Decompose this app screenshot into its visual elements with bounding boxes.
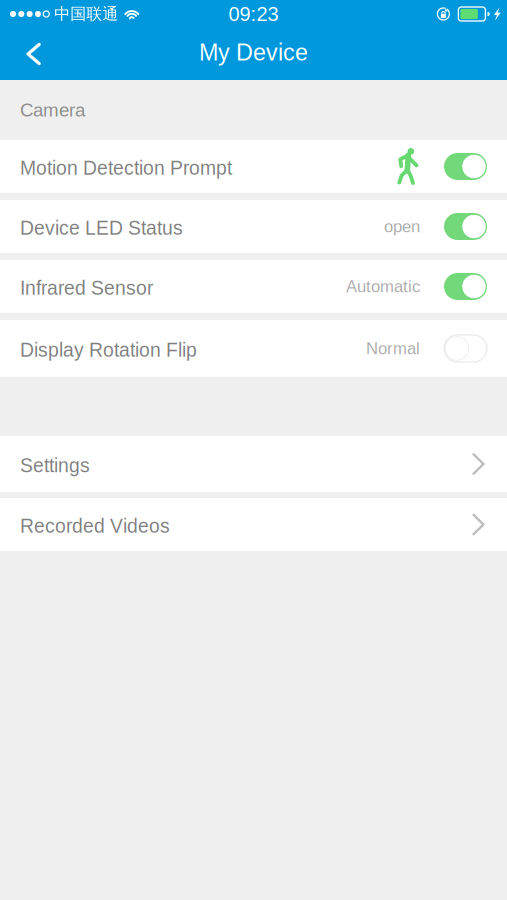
staticText: Device LED Status xyxy=(20,217,183,239)
staticText: Display Rotation Flip xyxy=(20,339,197,361)
button[interactable]: Motion Detection Prompt xyxy=(0,140,507,193)
staticText: Infrared Sensor xyxy=(20,277,153,299)
staticText: My Device xyxy=(199,39,308,66)
staticText: Camera xyxy=(20,100,85,120)
staticText: 中国联通 xyxy=(54,4,118,24)
button[interactable]: Settings xyxy=(0,436,507,492)
staticText: Recorded Videos xyxy=(20,515,170,537)
button[interactable]: Recorded Videos xyxy=(0,498,507,551)
staticText: open xyxy=(384,217,420,236)
button[interactable]: Device LED Status xyxy=(0,200,507,253)
staticText: Automatic xyxy=(346,277,420,296)
button[interactable]: Back xyxy=(8,29,59,79)
staticText: Settings xyxy=(20,455,90,476)
button[interactable]: Display Rotation Flip xyxy=(0,320,507,377)
staticText: 09:23 xyxy=(228,3,278,25)
staticText: Motion Detection Prompt xyxy=(20,157,232,179)
staticText: Normal xyxy=(366,339,420,358)
button[interactable]: Infrared Sensor xyxy=(0,260,507,313)
